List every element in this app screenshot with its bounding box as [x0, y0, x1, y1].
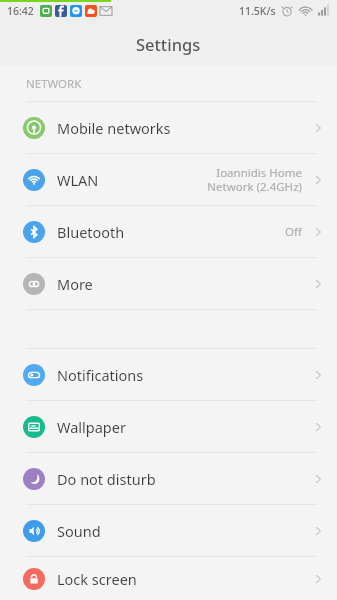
button[interactable]: More	[0, 258, 337, 309]
staticText: NETWORK	[26, 76, 82, 92]
button[interactable]: Bluetooth	[0, 206, 337, 257]
button[interactable]: Lock screen	[0, 557, 337, 600]
staticText: Mobile networks	[57, 118, 171, 138]
button[interactable]: WLAN	[0, 154, 337, 205]
other: Open More	[311, 277, 325, 291]
other: Open Bluetooth	[311, 225, 325, 239]
other: Open Wallpaper	[311, 420, 325, 434]
staticText: More	[57, 274, 93, 294]
staticText: Ioannidis Home Network (2.4GHz)	[207, 165, 302, 194]
staticText: Lock screen	[57, 569, 137, 589]
other: Open WLAN	[311, 173, 325, 187]
staticText: Sound	[57, 521, 101, 541]
other: Open Sound	[311, 524, 325, 538]
button[interactable]: Do not disturb	[0, 453, 337, 504]
staticText: 11.5K/s	[239, 4, 276, 18]
staticText: Notifications	[57, 365, 144, 385]
staticText: WLAN	[57, 170, 99, 190]
button[interactable]: Notifications	[0, 349, 337, 400]
other: Open Mobile networks	[311, 121, 325, 135]
other: Open Do not disturb	[311, 472, 325, 486]
staticText: Wallpaper	[57, 417, 126, 437]
staticText: 16:42	[7, 4, 34, 18]
other: Open Lock screen	[311, 572, 325, 586]
button[interactable]: Sound	[0, 505, 337, 556]
staticText: Settings	[136, 33, 201, 55]
other: Open Notifications	[311, 368, 325, 382]
button[interactable]: Wallpaper	[0, 401, 337, 452]
staticText: Off	[285, 224, 302, 240]
staticText: Do not disturb	[57, 469, 156, 489]
staticText: Bluetooth	[57, 222, 125, 242]
button[interactable]: Mobile networks	[0, 102, 337, 153]
